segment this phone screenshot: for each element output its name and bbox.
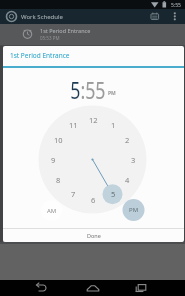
button[interactable]: Done (3, 229, 184, 242)
staticText: 10 (54, 135, 63, 145)
button[interactable]: PM (124, 200, 144, 220)
button[interactable]: AM (42, 201, 62, 221)
staticText: 9 (51, 155, 56, 165)
staticText: 6 (91, 195, 96, 205)
staticText: PM (129, 206, 139, 214)
staticText: 1st Period Entrance (10, 51, 70, 60)
staticText: 5 (111, 189, 116, 199)
staticText: 11 (69, 120, 78, 130)
button[interactable] (33, 280, 49, 296)
staticText: 5:55 (171, 2, 181, 9)
staticText: 4 (125, 175, 130, 185)
staticText: Work Schedule (21, 13, 63, 21)
staticText: 12 (89, 115, 98, 125)
staticText: AM (47, 207, 57, 215)
staticText: PM (108, 90, 116, 97)
button[interactable] (85, 280, 101, 296)
staticText: 3 (131, 155, 136, 165)
staticText: 8 (56, 175, 61, 185)
button[interactable]: 1st Period Entrance (0, 24, 185, 46)
button[interactable] (133, 280, 149, 296)
staticText: 2 (125, 135, 130, 145)
staticText: 7 (71, 189, 76, 199)
staticText: 1 (111, 120, 116, 130)
staticText: 05:53 PM (40, 35, 60, 41)
button[interactable]: Work Schedule (0, 9, 185, 24)
staticText: 5:55 (70, 73, 106, 106)
staticText: 1st Period Entrance (40, 27, 91, 34)
staticText: Done (87, 232, 101, 239)
